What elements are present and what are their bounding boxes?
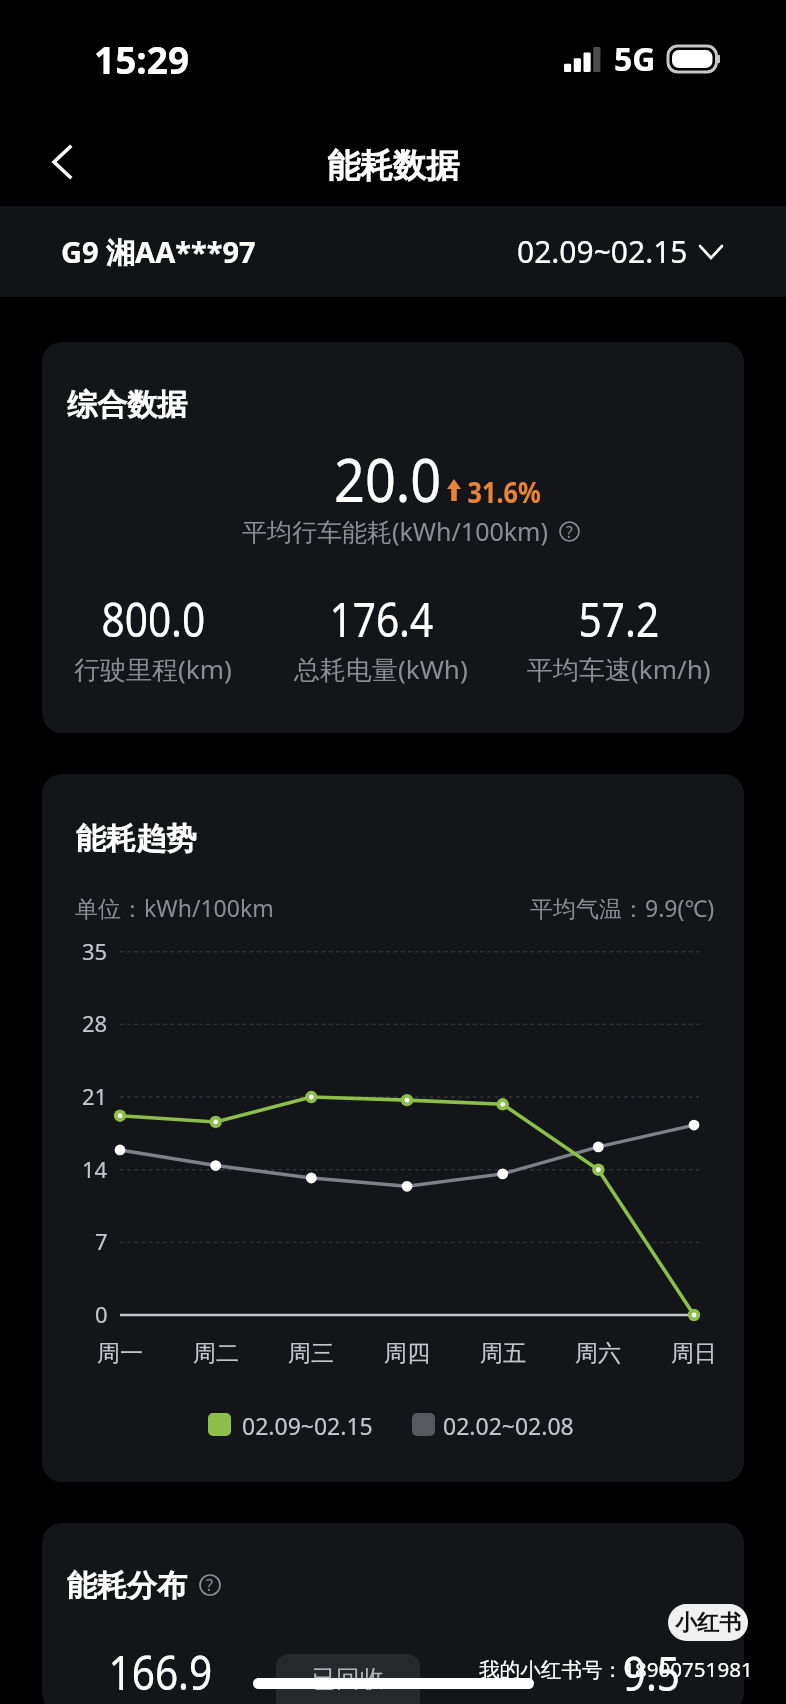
staticText: 02.02~02.08 [443,1410,574,1441]
button[interactable]: 综合数据 [42,342,744,733]
staticText: 周四 [384,1339,430,1368]
staticText: 周五 [480,1339,526,1368]
staticText: 15:29 [94,34,190,84]
staticText: 5G [614,37,656,81]
staticText: 21 [82,1081,108,1111]
staticText: 平均行车能耗(kWh/100km) [242,514,548,548]
staticText: 20.0 [334,438,442,520]
staticText: 平均气温：9.9(℃) [530,892,715,923]
staticText: G9 湘AA***97 [61,232,256,272]
staticText: 周一 [97,1339,143,1368]
button[interactable]: 02.09~02.15 [202,1402,382,1446]
staticText: 我的小红书号：18900751981 [479,1655,753,1683]
button[interactable]: Help [199,1574,221,1596]
staticText: 能耗数据 [327,145,459,187]
staticText: 176.4 [329,587,434,651]
staticText: 周三 [288,1339,334,1368]
staticText: ? [206,1574,214,1596]
staticText: 02.09~02.15 [517,231,688,272]
staticText: 28 [82,1008,108,1038]
staticText: 综合数据 [67,386,187,424]
button[interactable]: 02.09~02.15 [517,231,722,272]
staticText: 能耗分布 [67,1567,187,1605]
button[interactable]: 能耗趋势 [42,774,744,1482]
staticText: 14 [82,1154,108,1184]
staticText: 周日 [671,1339,717,1368]
staticText: 0 [95,1299,108,1329]
staticText: 行驶里程(km) [74,651,232,687]
staticText: 平均车速(km/h) [527,651,711,687]
button[interactable]: 能耗分布 [42,1523,744,1704]
staticText: 总耗电量(kWh) [294,651,468,687]
staticText: 02.09~02.15 [242,1410,373,1441]
staticText: 单位：kWh/100km [75,892,274,923]
staticText: 小红书 [675,1609,741,1637]
staticText: 已回收 [312,1664,384,1694]
button[interactable]: 02.02~02.08 [406,1402,586,1446]
staticText: 周二 [193,1339,239,1368]
staticText: 35 [82,936,108,966]
staticText: 800.0 [101,587,206,651]
button[interactable]: Back [18,118,106,206]
staticText: 能耗趋势 [76,820,196,858]
staticText: 周六 [575,1339,621,1368]
staticText: 7 [95,1226,108,1256]
staticText: 166.9 [108,1640,213,1704]
staticText: ? [566,521,573,542]
staticText: 57.2 [579,587,659,651]
button[interactable]: Help [559,521,580,542]
staticText: 9.5 [623,1641,680,1704]
staticText: 31.6% [467,472,541,511]
